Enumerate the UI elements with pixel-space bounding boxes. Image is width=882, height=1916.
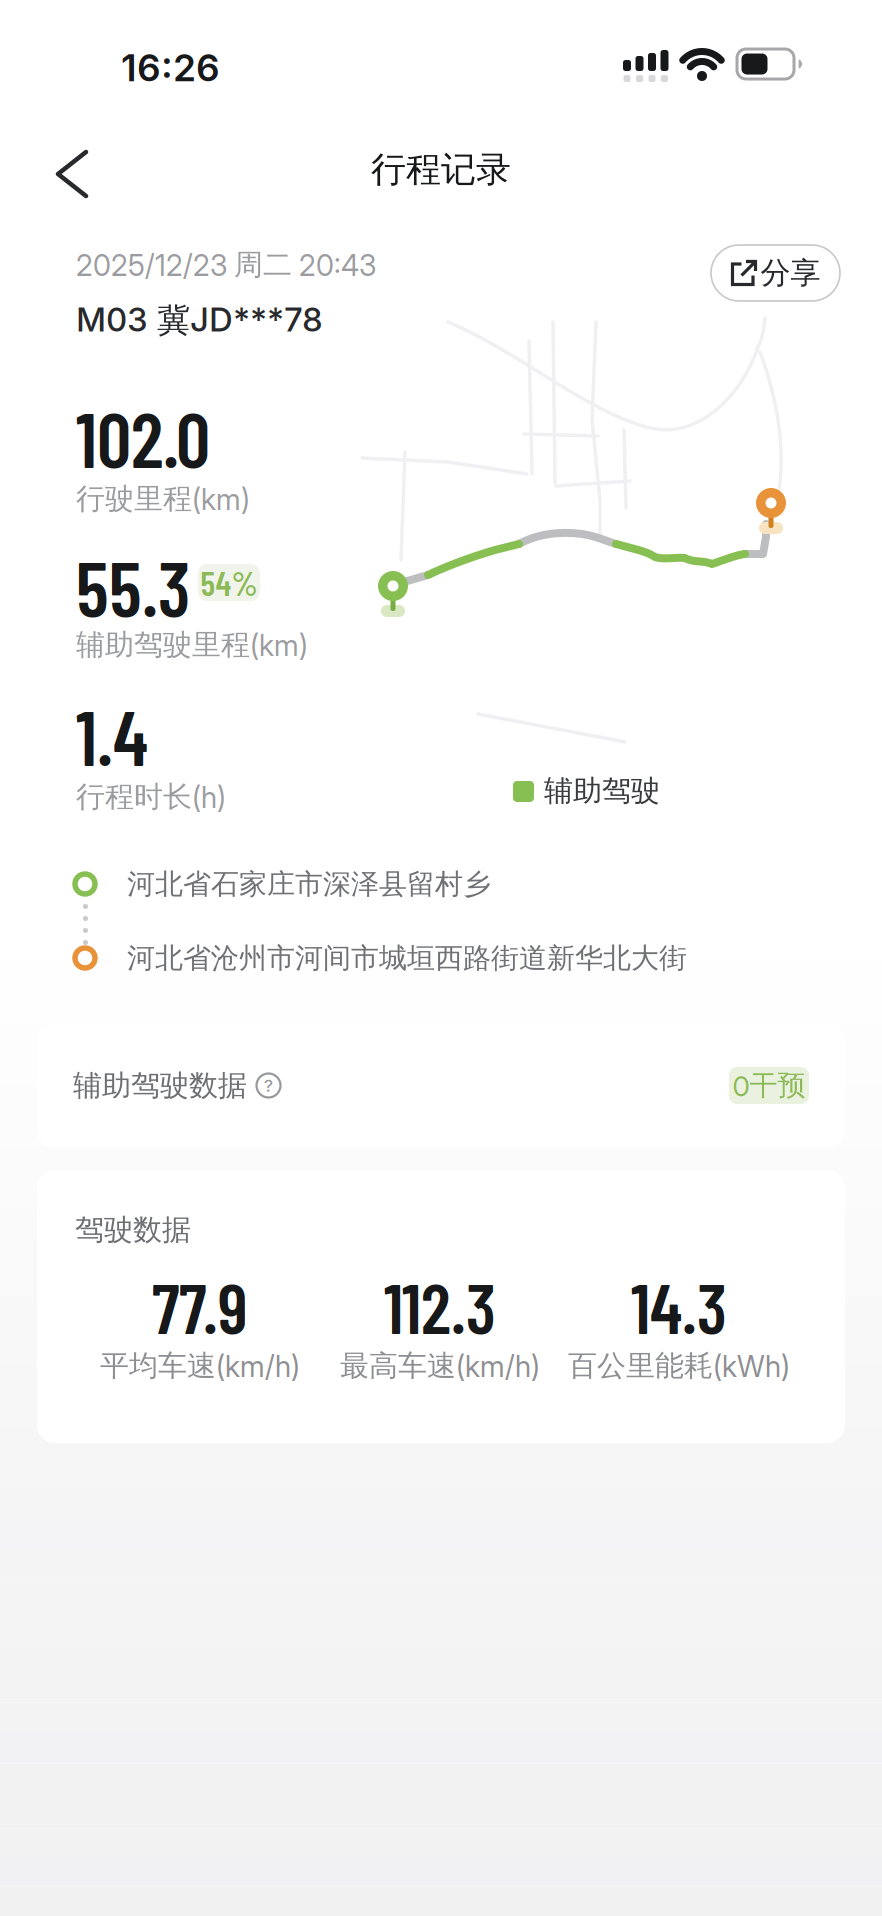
staticText: 0干预 — [732, 1068, 805, 1103]
staticText: 行驶里程(km) — [76, 481, 250, 517]
staticText: 112.3 — [384, 1264, 496, 1348]
staticText: 辅助驾驶里程(km) — [76, 627, 308, 663]
staticText: 2025/12/23 周二 20:43 — [76, 247, 376, 283]
staticText: 河北省石家庄市深泽县留村乡 — [127, 867, 491, 901]
staticText: 1.4 — [76, 690, 148, 781]
staticText: M03 冀JD***78 — [76, 300, 323, 341]
staticText: 102.0 — [76, 392, 210, 483]
staticText: 平均车速(km/h) — [100, 1348, 300, 1384]
staticText: 最高车速(km/h) — [340, 1348, 540, 1384]
staticText: 行程记录 — [371, 148, 511, 191]
staticText: 河北省沧州市河间市城垣西路街道新华北大街 — [127, 941, 687, 975]
staticText: 55.3 — [76, 541, 190, 632]
button[interactable]: 分享 — [711, 245, 840, 301]
staticText: 14.3 — [631, 1264, 727, 1348]
staticText: 16:26 — [121, 46, 220, 90]
staticText: 行程时长(h) — [76, 779, 226, 815]
staticText: 百公里能耗(kWh) — [568, 1348, 790, 1384]
staticText: 辅助驾驶数据 — [73, 1068, 247, 1103]
button[interactable]: 返回 — [34, 142, 98, 206]
staticText: 分享 — [760, 255, 820, 291]
button[interactable]: 辅助驾驶数据说明 — [256, 1073, 281, 1098]
staticText: ? — [264, 1075, 273, 1096]
staticText: 辅助驾驶 — [544, 773, 660, 809]
staticText: 驾驶数据 — [75, 1212, 191, 1248]
staticText: 77.9 — [152, 1264, 248, 1348]
staticText: 54% — [200, 562, 257, 603]
